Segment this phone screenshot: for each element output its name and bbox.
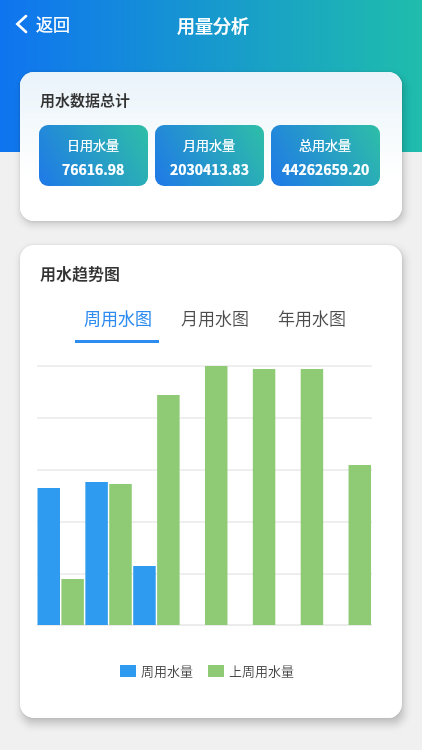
staticText: 周用水图 <box>84 305 152 330</box>
staticText: 用水数据总计 <box>40 89 131 111</box>
button[interactable]: 日用水量 <box>39 125 148 186</box>
button[interactable]: 年用水图 <box>263 299 360 335</box>
staticText: 月用水量 <box>183 135 236 154</box>
staticText: 2030413.83 <box>170 159 249 179</box>
staticText: 返回 <box>36 11 70 36</box>
staticText: 总用水量 <box>299 135 352 154</box>
button[interactable]: 月用水量 <box>155 125 264 186</box>
staticText: 月用水图 <box>181 305 249 330</box>
staticText: 上周用水量 <box>229 661 295 680</box>
button[interactable]: 周用水图 <box>69 299 166 335</box>
staticText: 用量分析 <box>177 12 249 38</box>
staticText: 用水趋势图 <box>40 261 121 284</box>
staticText: 44262659.20 <box>282 159 370 179</box>
staticText: 日用水量 <box>67 135 120 154</box>
button[interactable]: 总用水量 <box>271 125 380 186</box>
staticText: 76616.98 <box>62 159 125 179</box>
button[interactable]: 月用水图 <box>166 299 263 335</box>
staticText: 周用水量 <box>141 661 194 680</box>
staticText: 年用水图 <box>278 305 346 330</box>
button[interactable]: 返回 <box>13 9 72 38</box>
